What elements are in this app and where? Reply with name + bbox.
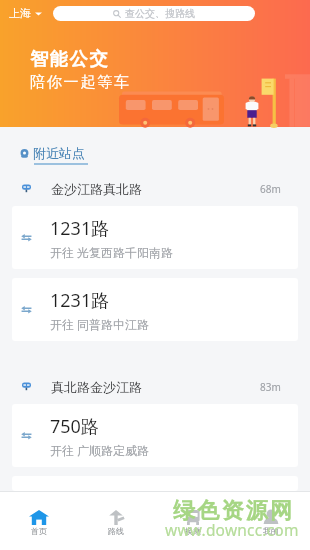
staticText: 查公交、搜路线: [125, 7, 195, 20]
staticText: 绿色资源网: [172, 497, 293, 525]
button[interactable]: 750路: [12, 404, 298, 467]
button[interactable]: 首页: [0, 491, 77, 550]
button[interactable]: 路线: [77, 491, 154, 550]
staticText: 68m: [260, 182, 281, 196]
button[interactable]: 1231路: [12, 278, 298, 341]
staticText: 路线: [108, 526, 124, 536]
button[interactable]: 我的: [232, 491, 310, 550]
staticText: 开往 广顺路定威路: [50, 442, 150, 458]
staticText: 开往 光复西路千阳南路: [50, 244, 174, 260]
button[interactable]: 附近站点: [0, 127, 85, 161]
button[interactable]: 上海: [0, 6, 46, 20]
button[interactable]: 1231路: [12, 206, 298, 269]
staticText: www.downcc.com: [165, 519, 299, 540]
staticText: 真北路金沙江路: [51, 379, 142, 395]
button[interactable]: 金沙江路真北路: [0, 181, 310, 197]
staticText: 首页: [31, 526, 47, 536]
staticText: 我的: [263, 526, 279, 536]
staticText: 750路: [50, 414, 99, 439]
staticText: 陪你一起等车: [30, 73, 131, 92]
staticText: 附近站点: [33, 145, 85, 161]
staticText: 1231路: [50, 216, 110, 241]
staticText: 1231路: [50, 288, 110, 313]
staticText: 换乘: [185, 526, 201, 536]
staticText: 金沙江路真北路: [51, 181, 142, 197]
staticText: 83m: [260, 380, 281, 394]
button[interactable]: 查公交、搜路线: [53, 6, 255, 21]
button[interactable]: 真北路金沙江路: [0, 379, 310, 395]
staticText: 智能公交: [30, 48, 110, 71]
button[interactable]: 换乘: [154, 491, 232, 550]
staticText: 开往 同普路中江路: [50, 316, 150, 332]
staticText: 上海: [9, 6, 31, 20]
